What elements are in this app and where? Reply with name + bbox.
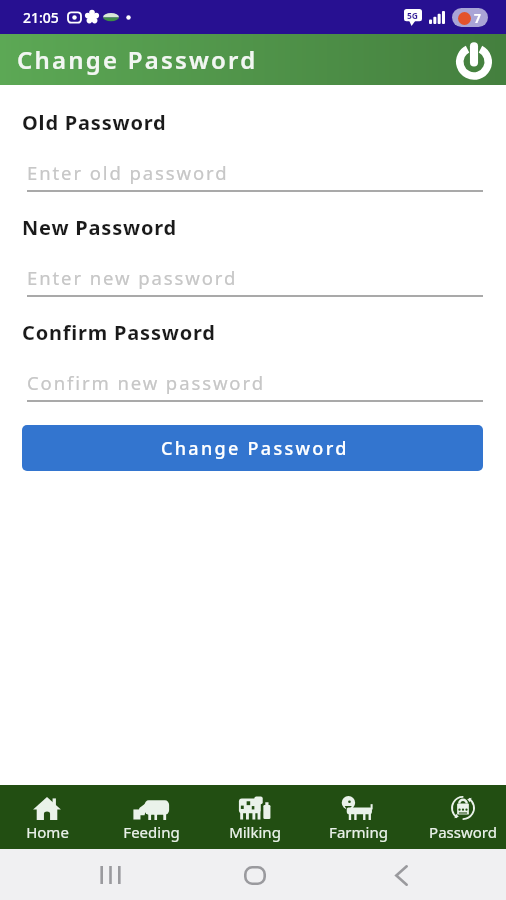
button[interactable]: Back [376,850,426,900]
staticText: Enter new password [27,265,238,290]
staticText: Confirm new password [27,370,265,395]
staticText: Confirm Password [22,319,216,346]
button[interactable]: Farming [308,785,409,849]
staticText: Enter old password [27,160,229,185]
staticText: Home [26,822,69,842]
staticText: Farming [329,822,388,842]
staticText: Feeding [123,822,180,842]
staticText: New Password [22,214,177,241]
button[interactable]: Logout [454,40,494,80]
staticText: Change Password [161,436,349,461]
staticText: Milking [229,822,281,842]
button[interactable]: Home [0,785,98,849]
button[interactable]: Feeding [101,785,202,849]
staticText: 7 [474,10,481,26]
staticText: 5G [407,10,419,22]
button[interactable]: Recents [85,850,135,900]
staticText: Change Password [17,43,258,76]
staticText: Password [429,822,497,842]
button[interactable]: Change Password [22,425,483,471]
staticText: Old Password [22,109,167,136]
button[interactable]: Milking [204,785,305,849]
button[interactable]: Password [412,785,506,849]
button[interactable]: Home [230,850,280,900]
staticText: 21:05 [23,8,59,27]
